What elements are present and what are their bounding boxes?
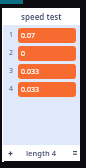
staticText: 0.07 bbox=[21, 31, 35, 41]
staticText: 0.033 bbox=[21, 85, 39, 95]
staticText: 2 bbox=[9, 48, 14, 58]
staticText: 0.033 bbox=[21, 67, 39, 77]
staticText: 0 bbox=[21, 49, 26, 59]
staticText: 1 bbox=[9, 30, 14, 40]
staticText: length 4 bbox=[26, 148, 57, 158]
staticText: 4 bbox=[9, 84, 14, 94]
staticText: speed test bbox=[21, 11, 62, 22]
button[interactable]: Add bbox=[3, 145, 18, 161]
button[interactable]: 4 bbox=[3, 80, 80, 98]
button[interactable]: 2 bbox=[3, 44, 80, 62]
staticText: 3 bbox=[9, 66, 14, 76]
button[interactable]: Menu bbox=[70, 145, 80, 161]
button[interactable]: 3 bbox=[3, 62, 80, 80]
button[interactable]: 1 bbox=[3, 26, 80, 44]
